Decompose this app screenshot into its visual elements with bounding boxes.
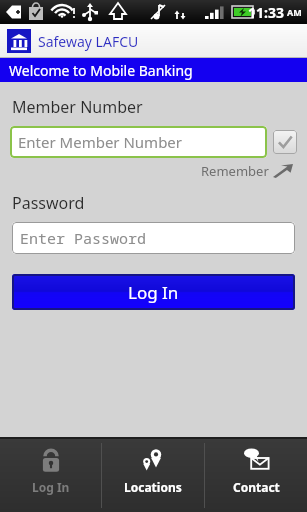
staticText: Safeway LAFCU (38, 32, 139, 51)
staticText: Locations (124, 479, 182, 495)
button[interactable]: Remember member number (273, 130, 297, 154)
staticText: Enter Member Number (18, 132, 183, 152)
button[interactable]: Enter Member Number (10, 126, 267, 158)
button[interactable]: Contact (205, 439, 307, 512)
other: Bank logo (7, 29, 31, 53)
staticText: AM (287, 6, 302, 18)
staticText: Welcome to Mobile Banking (9, 61, 193, 80)
button[interactable]: Log In (0, 439, 101, 512)
staticText: Log In (32, 479, 70, 495)
staticText: Enter Password (20, 228, 147, 248)
staticText: Remember (201, 162, 269, 180)
staticText: Password (12, 192, 85, 214)
staticText: Log In (128, 281, 179, 304)
button[interactable]: Enter Password (12, 222, 295, 254)
staticText: Member Number (12, 96, 143, 118)
button[interactable]: Log In (12, 274, 295, 310)
staticText: 11:33 (248, 3, 284, 22)
button[interactable]: Locations (102, 439, 204, 512)
staticText: Contact (233, 479, 280, 495)
